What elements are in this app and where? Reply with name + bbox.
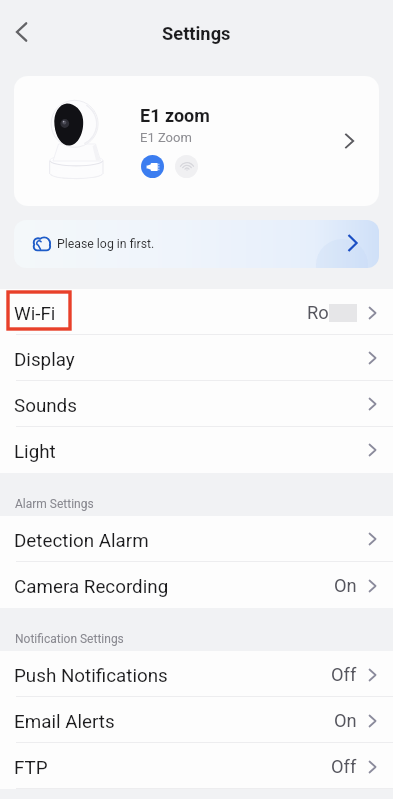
staticText: Display [14, 349, 75, 371]
staticText: Camera Recording [14, 576, 169, 598]
staticText: Sounds [14, 395, 77, 417]
button[interactable]: Email Alerts [0, 697, 393, 743]
button[interactable]: Sounds [0, 381, 393, 427]
staticText: Notification Settings [15, 632, 124, 646]
staticText: E1 zoom [140, 105, 210, 126]
staticText: On [334, 575, 357, 596]
staticText: Alarm Settings [15, 497, 94, 511]
staticText: Light [14, 441, 56, 463]
staticText: Email Alerts [14, 711, 115, 733]
button[interactable]: Camera Recording [0, 562, 393, 608]
button[interactable]: Push Notifications [0, 651, 393, 697]
button[interactable]: Battery status [141, 155, 164, 178]
staticText: Wi-Fi [14, 303, 56, 325]
staticText: Please log in first. [57, 237, 155, 251]
button[interactable]: Light [0, 427, 393, 473]
staticText: E1 Zoom [140, 130, 192, 145]
button[interactable]: E1 zoom [14, 76, 379, 206]
staticText: Push Notifications [14, 665, 168, 687]
staticText: Detection Alarm [14, 530, 149, 552]
staticText: Settings [162, 23, 231, 44]
staticText: On [334, 710, 357, 731]
staticText: Ro [307, 302, 329, 323]
button[interactable]: Back [0, 10, 44, 54]
staticText: Off [331, 664, 357, 685]
staticText: FTP [14, 757, 48, 779]
button[interactable]: Display [0, 335, 393, 381]
button[interactable]: Please log in first. [14, 220, 379, 268]
button[interactable]: Wi-Fi status [175, 155, 198, 178]
button[interactable]: FTP [0, 743, 393, 789]
staticText: Off [331, 756, 357, 777]
button[interactable]: Wi-Fi [0, 289, 393, 335]
button[interactable]: Detection Alarm [0, 516, 393, 562]
